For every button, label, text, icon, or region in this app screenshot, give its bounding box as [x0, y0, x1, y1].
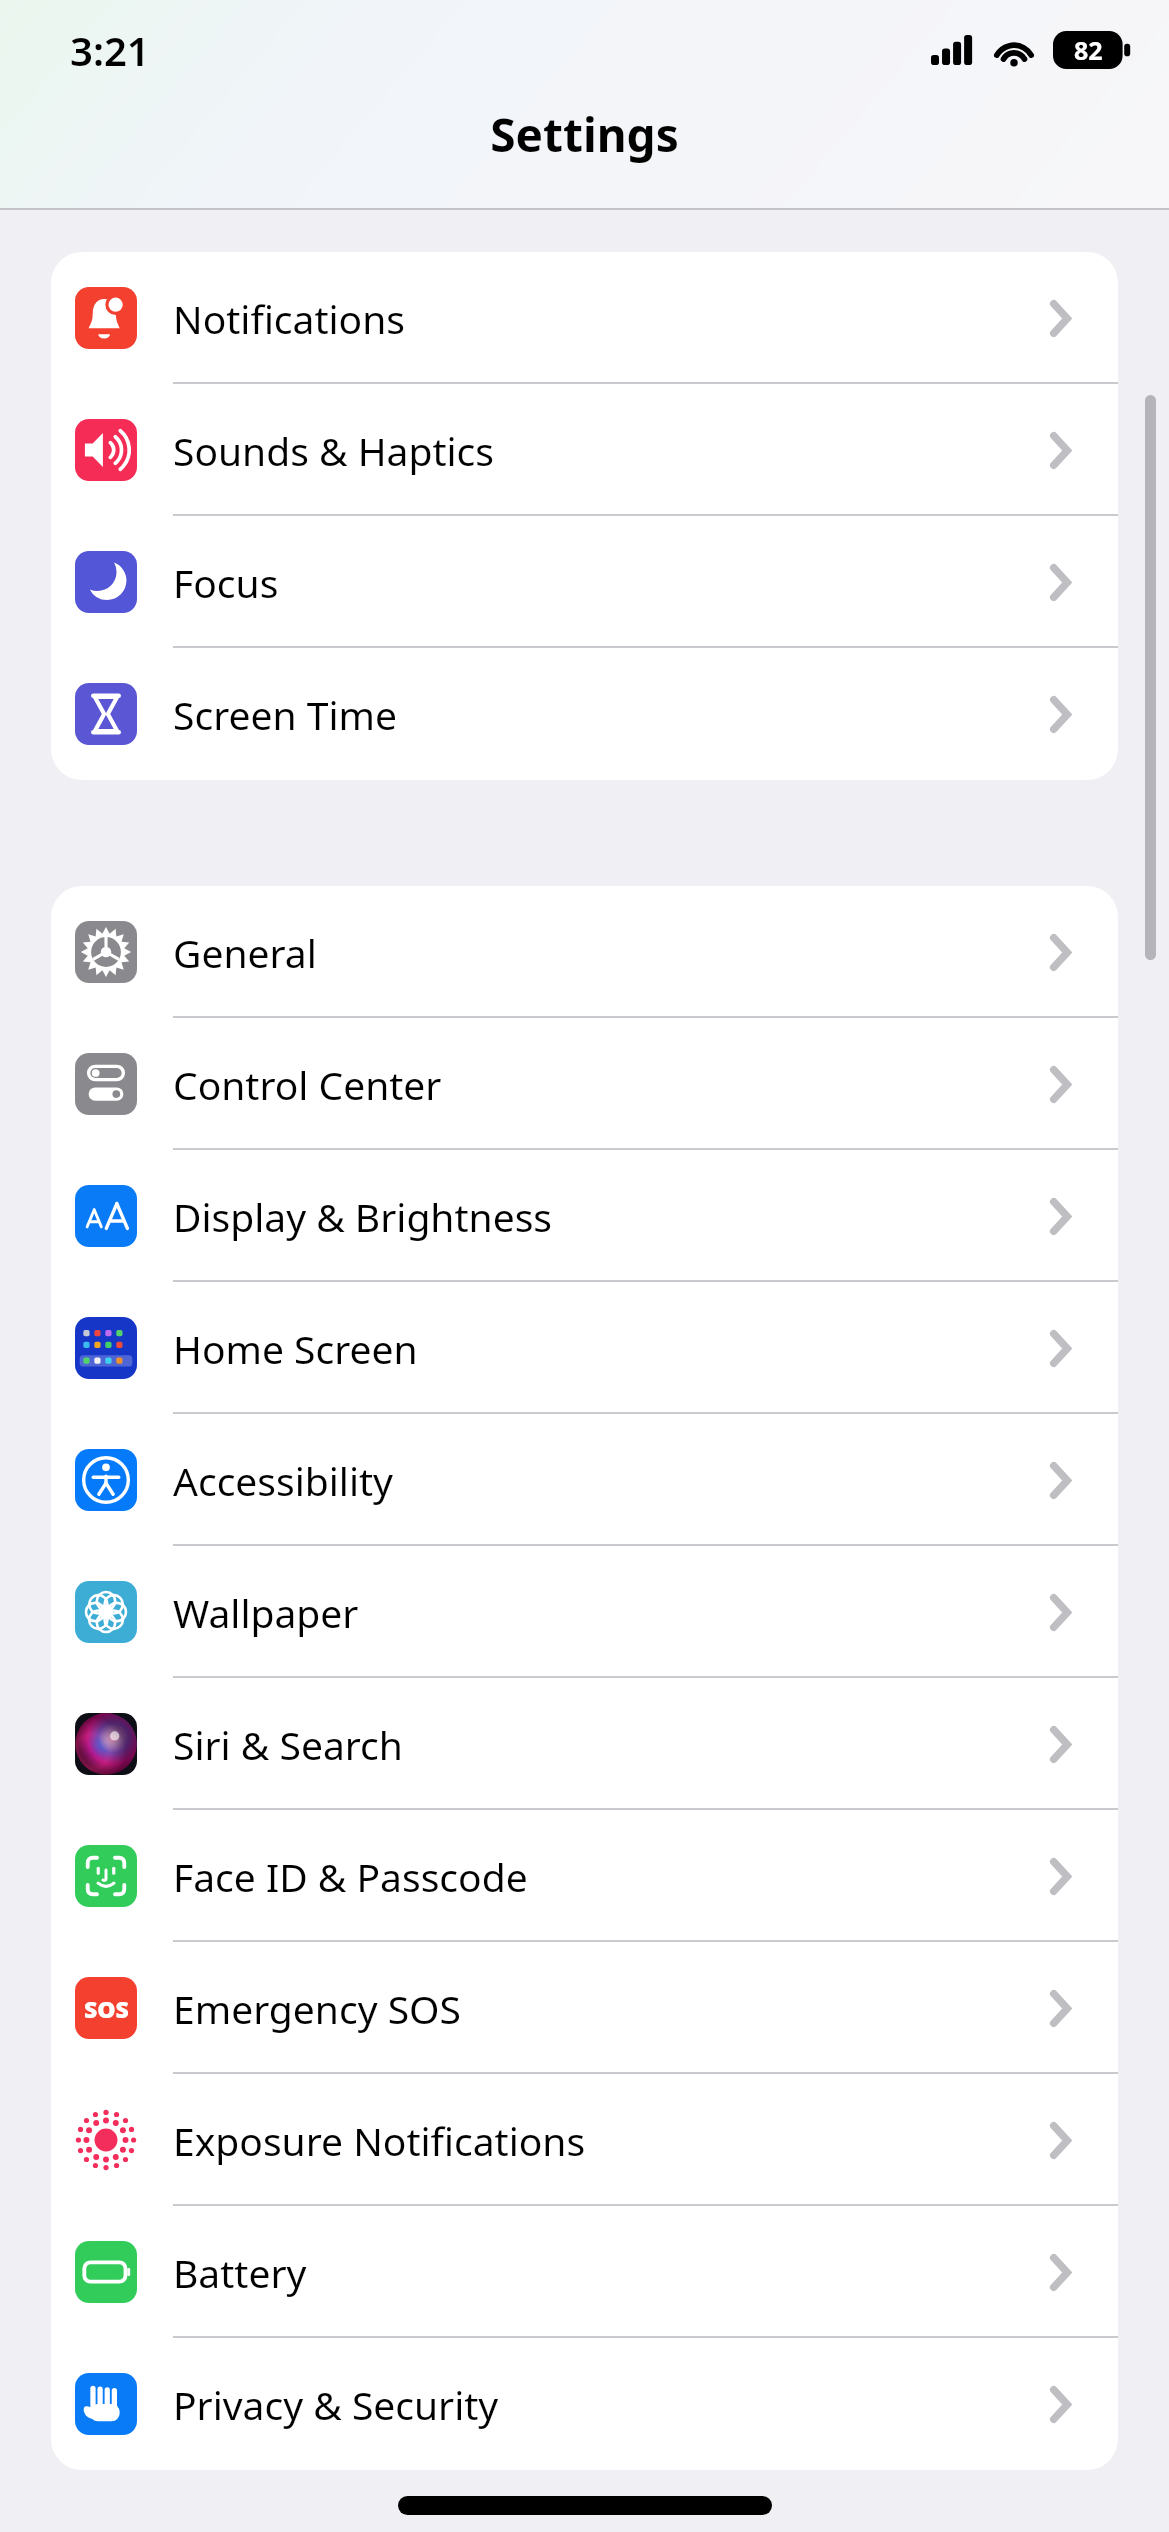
button[interactable]: Accessibility — [51, 1414, 1118, 1546]
button[interactable]: Privacy and Security — [51, 2338, 1118, 2470]
other: Screen Time — [75, 683, 137, 745]
staticText: Control Center — [173, 1058, 442, 1111]
other: Focus — [75, 551, 137, 613]
staticText: Sounds & Haptics — [173, 424, 495, 477]
other: Exposure Notifications — [75, 2109, 137, 2171]
staticText: Siri & Search — [173, 1718, 403, 1771]
staticText: 82 — [1074, 33, 1103, 67]
staticText: Notifications — [173, 292, 405, 345]
other: Notifications — [75, 287, 137, 349]
other: General — [75, 921, 137, 983]
staticText: Battery — [173, 2246, 307, 2299]
other: Wallpaper — [75, 1581, 137, 1643]
other: Home Screen — [75, 1317, 137, 1379]
other: Siri and Search — [75, 1713, 137, 1775]
staticText: Emergency SOS — [173, 1982, 461, 2035]
button[interactable]: Emergency SOS — [51, 1942, 1118, 2074]
button[interactable]: Siri and Search — [51, 1678, 1118, 1810]
staticText: Accessibility — [173, 1454, 393, 1507]
staticText: Focus — [173, 556, 279, 609]
button[interactable]: Notifications — [51, 252, 1118, 384]
staticText: Settings — [0, 103, 1169, 166]
staticText: Home Screen — [173, 1322, 418, 1375]
other: Face ID and Passcode — [75, 1845, 137, 1907]
button[interactable]: Battery — [51, 2206, 1118, 2338]
staticText: Display & Brightness — [173, 1190, 553, 1243]
staticText: SOS — [84, 1993, 129, 2024]
staticText: General — [173, 926, 317, 979]
other: Emergency SOS — [75, 1977, 137, 2039]
other: Control Center — [75, 1053, 137, 1115]
button[interactable]: Display and Brightness — [51, 1150, 1118, 1282]
button[interactable]: Home Screen — [51, 1282, 1118, 1414]
button[interactable]: Focus — [51, 516, 1118, 648]
staticText: Privacy & Security — [173, 2378, 499, 2431]
staticText: 3:21 — [70, 23, 150, 77]
staticText: Face ID & Passcode — [173, 1850, 528, 1903]
button[interactable]: Sounds and Haptics — [51, 384, 1118, 516]
other: Sounds and Haptics — [75, 419, 137, 481]
button[interactable]: Screen Time — [51, 648, 1118, 780]
button[interactable]: Wallpaper — [51, 1546, 1118, 1678]
button[interactable]: General — [51, 886, 1118, 1018]
other: Display and Brightness — [75, 1185, 137, 1247]
other: Privacy and Security — [75, 2373, 137, 2435]
other: Battery — [75, 2241, 137, 2303]
button[interactable]: Face ID and Passcode — [51, 1810, 1118, 1942]
button[interactable]: Exposure Notifications — [51, 2074, 1118, 2206]
other: Accessibility — [75, 1449, 137, 1511]
button[interactable]: Control Center — [51, 1018, 1118, 1150]
staticText: Exposure Notifications — [173, 2114, 586, 2167]
staticText: Wallpaper — [173, 1586, 359, 1639]
staticText: Screen Time — [173, 688, 397, 741]
